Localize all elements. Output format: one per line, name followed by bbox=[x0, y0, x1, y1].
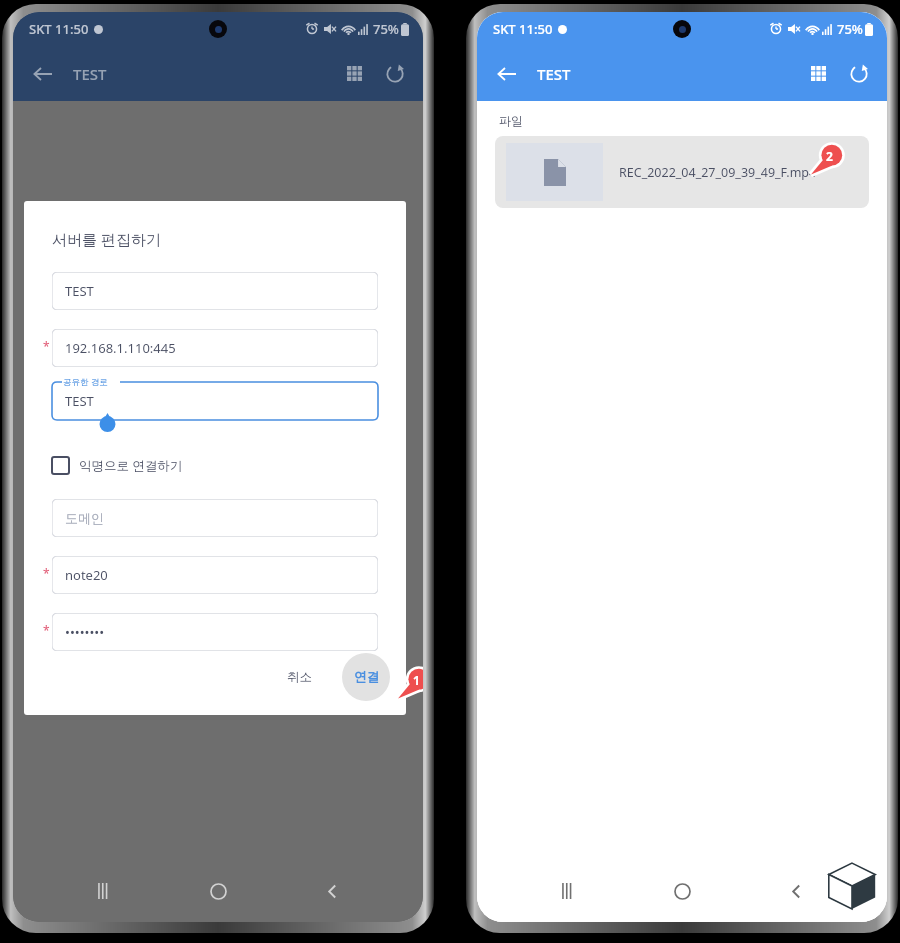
button[interactable]: 익명으로 연결하기 bbox=[52, 451, 183, 479]
button[interactable]: note20 bbox=[52, 556, 378, 594]
staticText: 1 bbox=[413, 672, 420, 688]
staticText: * bbox=[43, 622, 50, 638]
staticText: 공유한 경로 bbox=[63, 376, 108, 388]
button[interactable]: Recents bbox=[83, 869, 127, 913]
button[interactable]: Back bbox=[310, 869, 354, 913]
button[interactable]: Refresh bbox=[375, 54, 415, 94]
staticText: 연결 bbox=[354, 669, 379, 685]
staticText: REC_2022_04_27_09_39_49_F.mp4 bbox=[619, 164, 817, 181]
staticText: 파일 bbox=[499, 113, 523, 128]
staticText: TEST bbox=[65, 282, 94, 300]
staticText: * bbox=[43, 565, 50, 581]
button[interactable]: Refresh bbox=[839, 54, 879, 94]
button[interactable]: 192.168.1.110:445 bbox=[52, 329, 378, 367]
button[interactable]: REC_2022_04_27_09_39_49_F.mp4 bbox=[495, 136, 869, 208]
staticText: 취소 bbox=[287, 669, 312, 685]
staticText: 75% bbox=[837, 20, 863, 38]
staticText: SKT 11:50 bbox=[29, 20, 89, 38]
button[interactable]: Recents bbox=[547, 869, 591, 913]
staticText: 192.168.1.110:445 bbox=[65, 339, 176, 357]
button[interactable]: 도메인 bbox=[52, 499, 378, 537]
button[interactable]: Home bbox=[196, 869, 240, 913]
button[interactable]: 연결 bbox=[342, 653, 390, 701]
button[interactable]: Back bbox=[487, 54, 527, 94]
button[interactable]: Home bbox=[660, 869, 704, 913]
staticText: 75% bbox=[373, 20, 399, 38]
button[interactable]: Back bbox=[23, 54, 63, 94]
button[interactable]: TEST bbox=[52, 272, 378, 310]
staticText: 서버를 편집하기 bbox=[52, 229, 161, 249]
button[interactable]: TEST bbox=[52, 382, 378, 420]
button[interactable]: •••••••• bbox=[52, 613, 378, 651]
staticText: TEST bbox=[65, 392, 94, 410]
button[interactable]: Grid view bbox=[799, 54, 839, 94]
staticText: note20 bbox=[65, 566, 108, 584]
staticText: •••••••• bbox=[65, 623, 105, 641]
staticText: TEST bbox=[73, 64, 107, 84]
staticText: * bbox=[43, 338, 50, 354]
button[interactable]: 취소 bbox=[277, 659, 322, 695]
staticText: SKT 11:50 bbox=[493, 20, 553, 38]
staticText: 2 bbox=[826, 148, 833, 164]
button[interactable]: Grid view bbox=[335, 54, 375, 94]
staticText: TEST bbox=[537, 64, 571, 84]
staticText: 도메인 bbox=[65, 510, 104, 526]
staticText: 익명으로 연결하기 bbox=[79, 457, 183, 474]
button[interactable]: Back bbox=[774, 869, 818, 913]
